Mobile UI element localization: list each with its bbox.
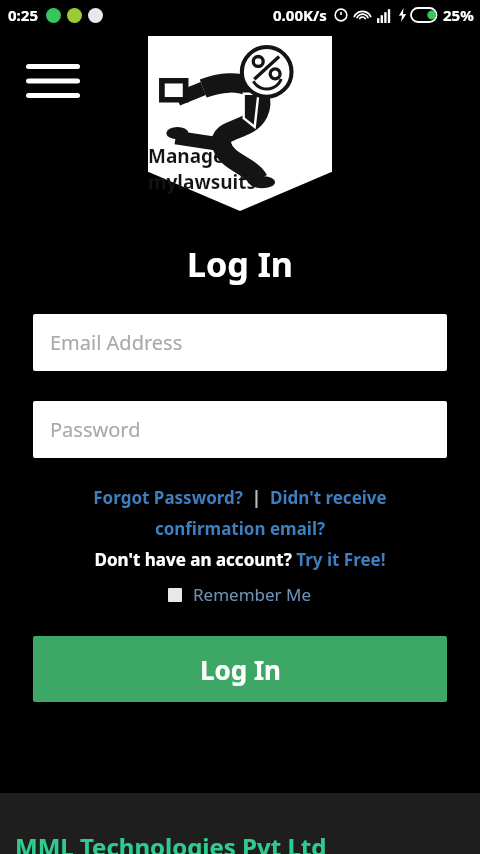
staticText: Log In — [0, 241, 480, 287]
button[interactable]: Log In — [33, 636, 447, 702]
staticText: Manage mylawsuits — [148, 143, 332, 195]
staticText: 25% — [443, 5, 474, 25]
button[interactable]: Forgot Password? | Didn't receive confir… — [58, 486, 422, 540]
staticText: Email Address — [50, 329, 183, 356]
button[interactable]: Remember Me — [0, 583, 480, 606]
button[interactable]: Don't have an account? Try it Free! — [0, 548, 480, 571]
staticText: Log In — [200, 652, 281, 687]
button[interactable]: Password — [33, 401, 447, 458]
staticText: 0:25 — [8, 5, 38, 25]
staticText: Remember Me — [193, 583, 312, 606]
staticText: MML Technologies Pvt Ltd — [15, 830, 327, 854]
staticText: 0.00K/s — [273, 5, 327, 25]
button[interactable]: Email Address — [33, 314, 447, 371]
button[interactable]: Menu — [20, 57, 86, 105]
staticText: Password — [50, 416, 141, 443]
